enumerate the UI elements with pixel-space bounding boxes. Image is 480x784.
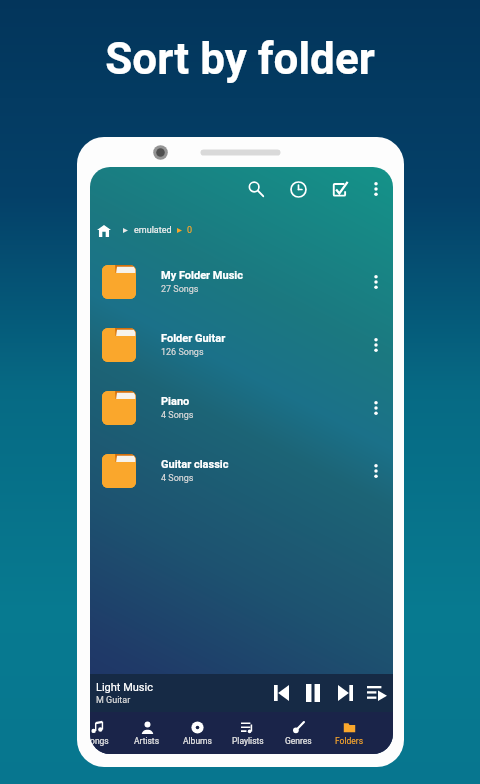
staticText: Folders (335, 736, 364, 746)
button[interactable]: Folder Guitar (90, 313, 393, 376)
staticText: Light Music (96, 681, 153, 694)
button[interactable]: Playlists (222, 712, 273, 754)
staticText: Folder Guitar (161, 332, 226, 345)
staticText: 27 Songs (161, 284, 199, 295)
staticText: 4 Songs (161, 473, 194, 484)
button[interactable]: Recent (277, 167, 320, 211)
button[interactable]: Previous (265, 674, 297, 712)
button[interactable]: More (363, 269, 389, 295)
button[interactable]: Select all (320, 167, 358, 211)
staticText: 4 Songs (161, 410, 194, 421)
button[interactable]: Folders (324, 712, 375, 754)
button[interactable]: Home (97, 225, 111, 237)
staticText: M Guitar (96, 695, 131, 706)
staticText: Playlists (232, 736, 264, 746)
button[interactable]: Artists (122, 712, 172, 754)
button[interactable]: Guitar classic (90, 439, 393, 502)
button[interactable]: Piano (90, 376, 393, 439)
button[interactable]: Songs (90, 712, 122, 754)
button[interactable]: Pause (297, 674, 329, 712)
button[interactable]: Search (234, 167, 277, 211)
staticText: 0 (187, 225, 193, 236)
staticText: Guitar classic (161, 458, 229, 471)
button[interactable]: More options (358, 167, 393, 211)
button[interactable]: Next (329, 674, 361, 712)
staticText: My Folder Music (161, 269, 243, 282)
staticText: Genres (285, 736, 312, 746)
staticText: emulated (134, 225, 172, 236)
button[interactable]: Albums (172, 712, 222, 754)
button[interactable]: Genres (273, 712, 324, 754)
button[interactable]: More (363, 332, 389, 358)
button[interactable]: Queue (361, 674, 393, 712)
staticText: Sort by folder (0, 33, 480, 85)
staticText: Albums (183, 736, 212, 746)
staticText: 126 Songs (161, 347, 204, 358)
staticText: Artists (134, 736, 160, 746)
button[interactable]: More (363, 395, 389, 421)
button[interactable]: My Folder Music (90, 250, 393, 313)
staticText: Piano (161, 395, 190, 408)
staticText: Songs (90, 736, 109, 746)
button[interactable]: More (363, 458, 389, 484)
